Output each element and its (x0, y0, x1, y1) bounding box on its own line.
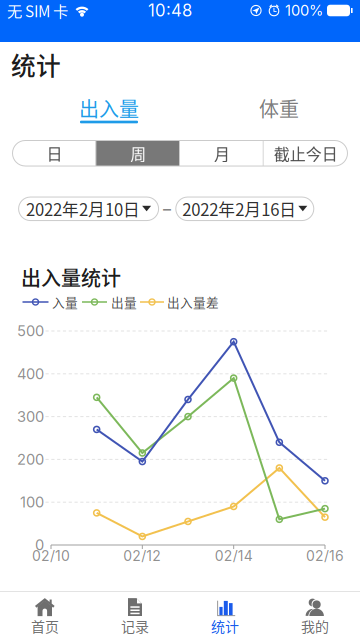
staticText: 月 (214, 142, 230, 165)
button[interactable]: 周 (96, 140, 180, 166)
staticText: 200 (17, 450, 44, 468)
staticText: 日 (46, 142, 62, 165)
staticText: 无 SIM 卡 (7, 0, 68, 22)
staticText: 02/14 (215, 547, 253, 564)
staticText: 100% (285, 2, 323, 19)
staticText: 100 (20, 493, 44, 511)
staticText: 500 (17, 322, 44, 340)
staticText: 我的 (301, 616, 329, 636)
button[interactable]: 截止今日 (264, 140, 348, 166)
staticText: 入量 (52, 293, 78, 311)
staticText: 02/12 (123, 547, 161, 564)
button[interactable]: 我的 (270, 591, 360, 640)
staticText: 2022年2月10日 (26, 197, 140, 221)
staticText: 统计 (11, 47, 61, 82)
staticText: 02/16 (306, 547, 344, 564)
staticText: 出入量差 (167, 293, 219, 311)
staticText: 400 (17, 365, 44, 383)
staticText: 300 (17, 408, 44, 425)
button[interactable]: 月 (180, 140, 264, 166)
button[interactable]: 日 (12, 140, 96, 166)
staticText: 0 (35, 536, 44, 554)
staticText: 统计 (211, 616, 239, 636)
staticText: 出入量 (79, 93, 139, 122)
button[interactable]: 2022年2月16日 (176, 197, 314, 221)
staticText: 2022年2月16日 (182, 197, 296, 221)
staticText: 02/10 (32, 547, 70, 564)
staticText: 截止今日 (274, 142, 338, 165)
staticText: 体重 (259, 93, 299, 122)
staticText: – (163, 199, 171, 218)
staticText: 首页 (31, 616, 59, 636)
staticText: 周 (130, 142, 146, 165)
button[interactable]: 首页 (0, 591, 90, 640)
staticText: 出入量统计 (21, 262, 121, 291)
staticText: 出量 (111, 293, 137, 311)
button[interactable]: 2022年2月10日 (19, 197, 159, 221)
button[interactable]: 体重 (224, 98, 334, 134)
button[interactable]: 统计 (180, 591, 270, 640)
staticText: 记录 (121, 616, 149, 636)
staticText: 10:48 (148, 0, 192, 21)
button[interactable]: 记录 (90, 591, 180, 640)
button[interactable]: 出入量 (54, 98, 164, 134)
